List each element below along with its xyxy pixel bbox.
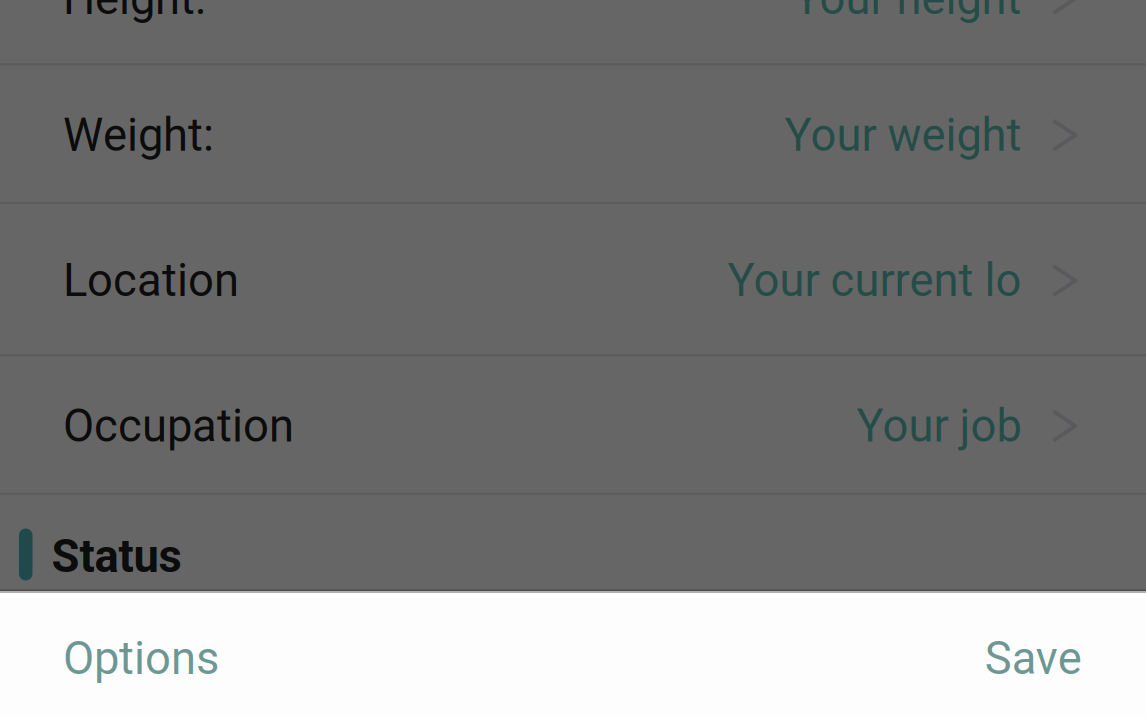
button[interactable]: Location	[0, 204, 1146, 357]
button[interactable]: Weight:	[0, 66, 1146, 204]
staticText: Your current lo	[727, 254, 1021, 307]
button[interactable]: Save	[945, 603, 1146, 713]
staticText: Options	[63, 632, 219, 685]
staticText: Your height	[793, 0, 1021, 25]
staticText: Status	[51, 530, 181, 583]
staticText: Save	[985, 632, 1082, 685]
button[interactable]: Height:	[0, 0, 1146, 66]
staticText: Your weight	[784, 109, 1021, 162]
staticText: Occupation	[63, 399, 294, 452]
staticText: Weight:	[63, 109, 214, 162]
staticText: Your job	[856, 399, 1021, 452]
button[interactable]: Occupation	[0, 357, 1146, 495]
staticText: Height:	[63, 0, 206, 25]
button[interactable]: Options	[0, 603, 259, 713]
staticText: Location	[63, 254, 239, 307]
